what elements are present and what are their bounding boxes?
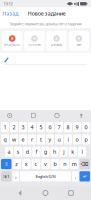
- button[interactable]: Clipboard: [31, 113, 35, 118]
- button[interactable]: 9: [73, 122, 81, 132]
- staticText: j: [63, 148, 64, 155]
- button[interactable]: Назад: [0, 8, 20, 19]
- staticText: Тренажер: [51, 43, 63, 47]
- staticText: Конспект: [28, 43, 40, 47]
- staticText: k: [71, 148, 74, 155]
- button[interactable]: ↵: [79, 171, 90, 181]
- staticText: v: [44, 160, 47, 168]
- staticText: s: [17, 148, 20, 155]
- button[interactable]: l: [78, 147, 86, 157]
- button[interactable]: 3: [19, 122, 27, 132]
- button[interactable]: Emoji: [54, 113, 60, 118]
- button[interactable]: ⇧: [1, 159, 11, 169]
- button[interactable]: Settings: [7, 113, 12, 118]
- button[interactable]: !#1: [1, 171, 11, 181]
- button[interactable]: ⌫: [79, 159, 90, 169]
- button[interactable]: w: [10, 134, 18, 145]
- button[interactable]: x: [22, 159, 31, 169]
- button[interactable]: t: [37, 134, 45, 145]
- staticText: 1: [3, 124, 6, 131]
- button[interactable]: 2: [10, 122, 18, 132]
- staticText: ⇧: [4, 161, 8, 167]
- button[interactable]: u: [55, 134, 63, 145]
- button[interactable]: h: [51, 147, 59, 157]
- button[interactable]: j: [60, 147, 68, 157]
- button[interactable]: e: [19, 134, 27, 145]
- staticText: Текст: [76, 43, 81, 47]
- button[interactable]: .: [72, 171, 78, 181]
- staticText: Задайте параметры домашнего задания: [9, 21, 81, 26]
- staticText: p: [84, 136, 87, 143]
- button[interactable]: i: [64, 134, 72, 145]
- staticText: c: [34, 160, 37, 168]
- button[interactable]: r: [28, 134, 36, 145]
- staticText: t: [40, 136, 42, 143]
- staticText: h: [53, 148, 56, 155]
- button[interactable]: b: [51, 159, 59, 169]
- staticText: r: [31, 136, 33, 143]
- staticText: d: [26, 148, 29, 155]
- button[interactable]: c: [32, 159, 40, 169]
- button[interactable]: Home: [40, 187, 51, 198]
- button[interactable]: Тренажер: [46, 31, 67, 51]
- staticText: q: [3, 136, 6, 143]
- staticText: x: [25, 160, 28, 168]
- staticText: English (US): [35, 174, 55, 179]
- button[interactable]: Текст: [69, 31, 89, 51]
- button[interactable]: Back: [15, 187, 25, 199]
- staticText: 6: [48, 124, 51, 131]
- staticText: y: [48, 136, 51, 143]
- staticText: o: [75, 136, 78, 143]
- staticText: Новое задание: [28, 10, 66, 17]
- button[interactable]: 1: [1, 122, 9, 132]
- staticText: .: [75, 173, 76, 180]
- button[interactable]: g: [41, 147, 49, 157]
- button[interactable]: z: [12, 159, 21, 169]
- staticText: ⌫: [81, 161, 89, 167]
- button[interactable]: 4: [28, 122, 36, 132]
- button[interactable]: 8: [64, 122, 72, 132]
- button[interactable]: a: [5, 147, 13, 157]
- button[interactable]: p: [82, 134, 90, 145]
- button[interactable]: English (US): [20, 171, 71, 181]
- staticText: a: [8, 148, 11, 155]
- button[interactable]: k: [69, 147, 77, 157]
- button[interactable]: 6: [46, 122, 54, 132]
- staticText: m: [72, 160, 77, 168]
- button[interactable]: Инструкция: [2, 31, 22, 51]
- button[interactable]: 0: [82, 122, 90, 132]
- staticText: f: [35, 148, 37, 155]
- button[interactable]: f: [32, 147, 40, 157]
- button[interactable]: m: [70, 159, 78, 169]
- staticText: w: [12, 136, 16, 143]
- staticText: 5: [39, 124, 42, 131]
- staticText: Инструкция: [4, 43, 20, 47]
- button[interactable]: Конспект: [24, 31, 45, 51]
- button[interactable]: Voice input: [79, 113, 84, 118]
- button[interactable]: q: [1, 134, 9, 145]
- button[interactable]: o: [73, 134, 81, 145]
- button[interactable]: 5: [37, 122, 45, 132]
- button[interactable]: s: [14, 147, 22, 157]
- staticText: 2: [12, 124, 15, 131]
- staticText: u: [57, 136, 60, 143]
- button[interactable]: Recents: [66, 188, 76, 198]
- staticText: g: [44, 148, 47, 155]
- button[interactable]: d: [23, 147, 31, 157]
- staticText: 8: [66, 124, 69, 131]
- staticText: b: [54, 160, 57, 168]
- button[interactable]: v: [41, 159, 50, 169]
- staticText: 7: [57, 124, 60, 131]
- staticText: 9: [75, 124, 78, 131]
- staticText: e: [21, 136, 24, 143]
- button[interactable]: ,: [12, 171, 19, 181]
- staticText: z: [15, 160, 18, 168]
- button[interactable]: n: [60, 159, 69, 169]
- button[interactable]: 7: [55, 122, 63, 132]
- staticText: ↵: [83, 173, 87, 179]
- staticText: 0: [84, 124, 87, 131]
- staticText: Назад: [2, 10, 18, 17]
- staticText: 13:12: [3, 1, 12, 6]
- staticText: l: [81, 148, 82, 155]
- button[interactable]: y: [46, 134, 54, 145]
